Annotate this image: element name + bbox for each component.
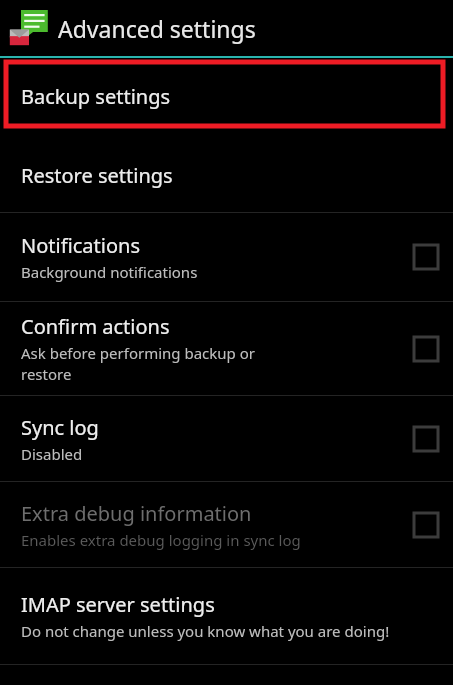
staticText: Enables extra debug logging in sync log [21,530,393,550]
button[interactable]: Restore settings [0,138,453,212]
button[interactable]: IMAP server settings [0,568,453,664]
button[interactable]: Sync log checkbox [399,396,453,481]
staticText: Background notifications [21,262,393,282]
staticText: IMAP server settings [21,591,215,618]
button[interactable]: Confirm actions [0,302,453,395]
staticText: Notifications [21,232,140,259]
staticText: Advanced settings [58,13,256,44]
button[interactable]: Notifications [0,213,453,301]
staticText: Backup settings [21,83,171,110]
staticText: Confirm actions [21,313,170,340]
staticText: Restore settings [21,162,173,189]
button[interactable]: Sync log [0,396,453,481]
button[interactable]: Extra debug information checkbox [399,482,453,567]
staticText: Sync log [21,414,99,441]
staticText: Do not change unless you know what you a… [21,621,401,641]
button[interactable]: Extra debug information [0,482,453,567]
staticText: Extra debug information [21,500,252,527]
staticText: Disabled [21,444,393,464]
staticText: Ask before performing backup or restore [21,343,281,385]
button[interactable]: Notifications checkbox [399,213,453,301]
button[interactable]: Confirm actions checkbox [399,302,453,395]
button[interactable]: Backup settings [0,58,453,138]
